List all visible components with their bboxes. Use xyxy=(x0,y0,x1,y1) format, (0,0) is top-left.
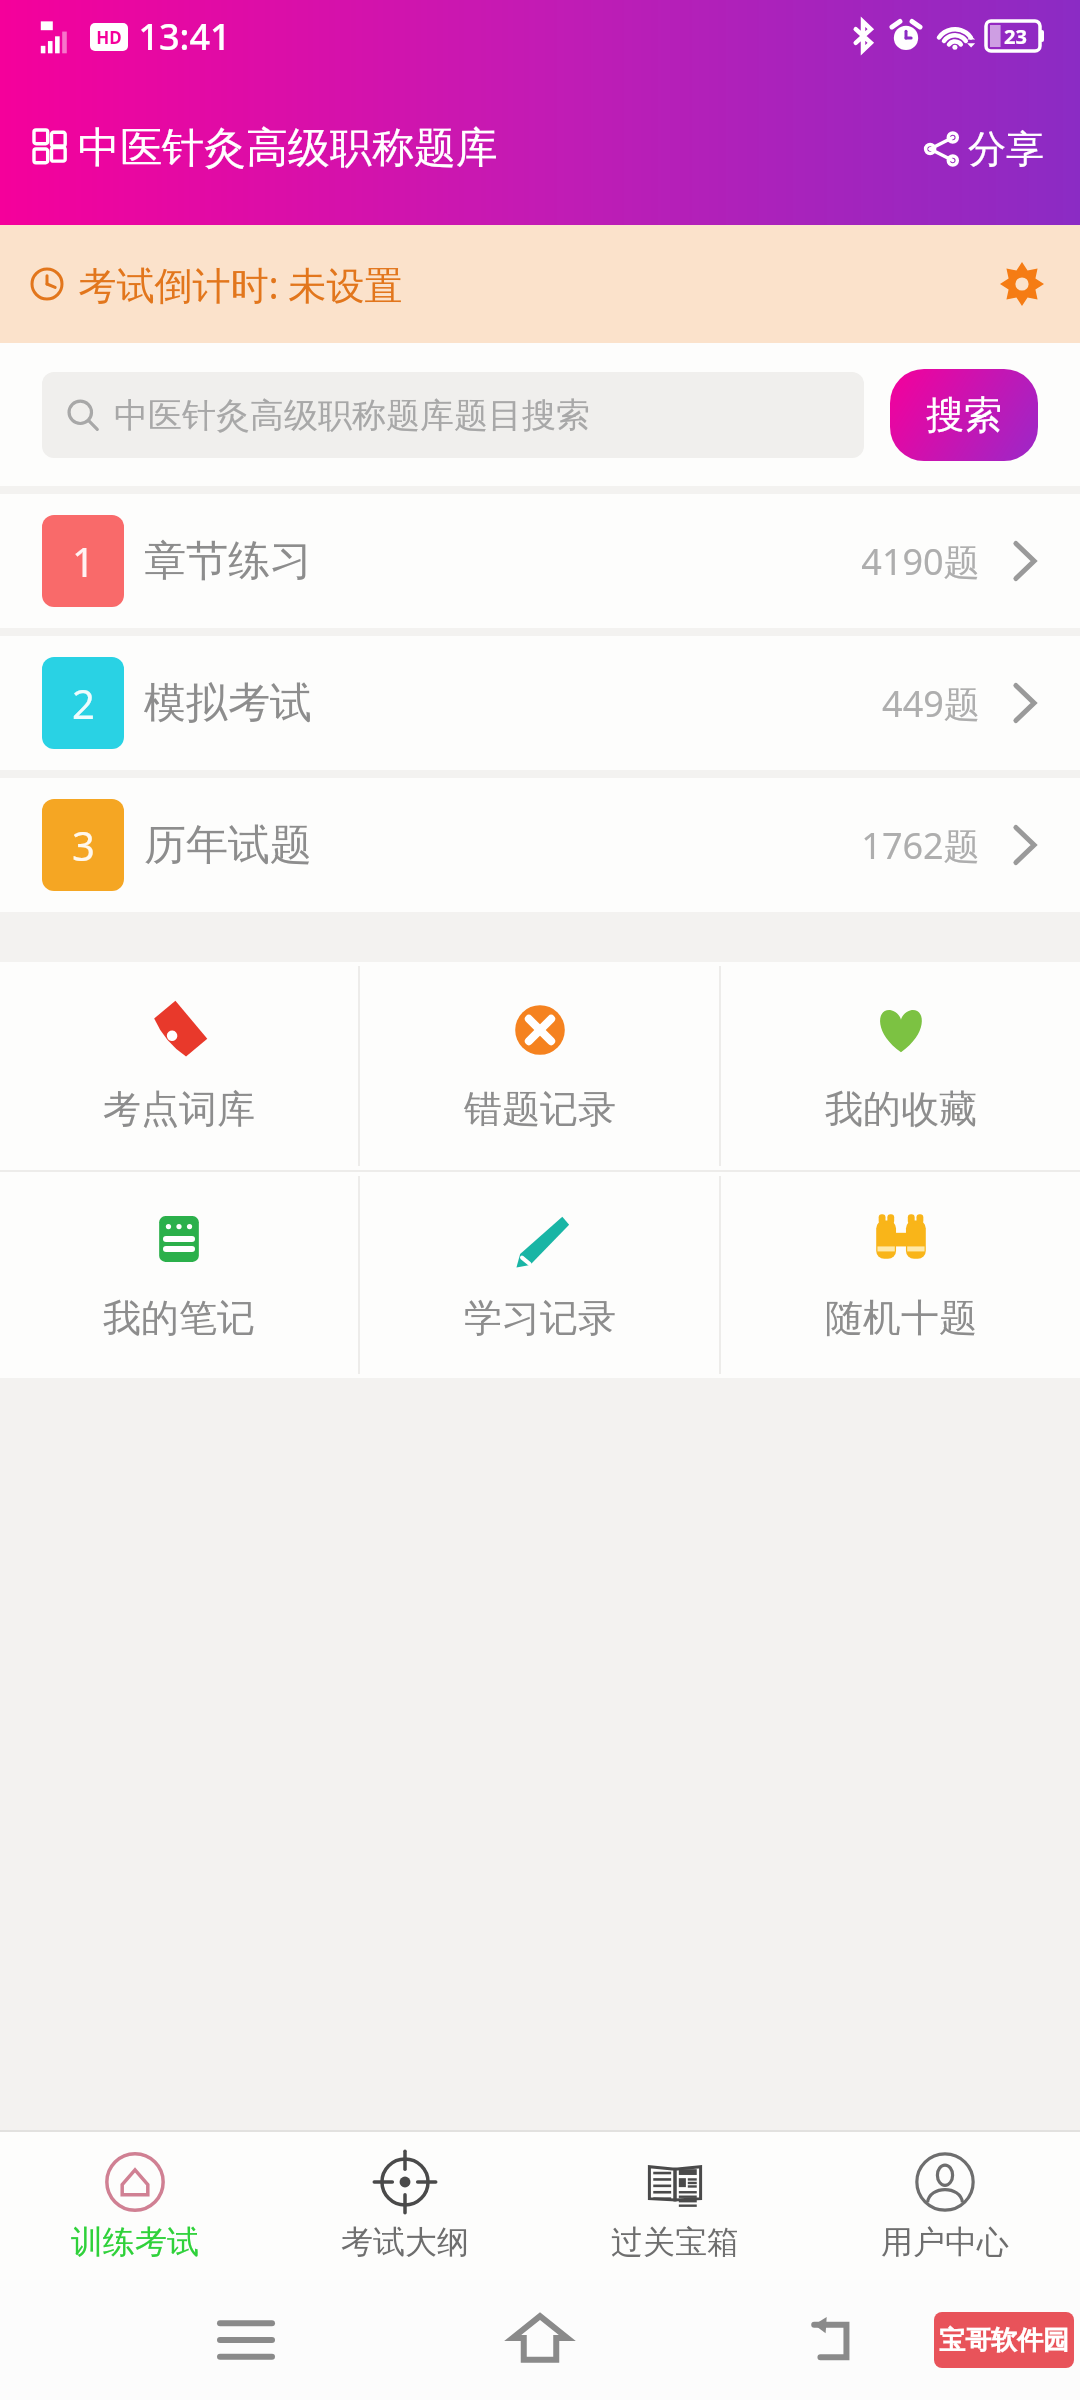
staticText: 3 xyxy=(72,818,95,872)
staticText: 13:41 xyxy=(138,12,231,61)
button[interactable]: 设置 xyxy=(990,252,1054,316)
button[interactable]: Home xyxy=(491,2294,589,2386)
staticText: 章节练习 xyxy=(144,535,312,588)
staticText: 过关宝箱 xyxy=(611,2222,739,2262)
staticText: 2 xyxy=(72,676,95,730)
staticText: 1762题 xyxy=(861,821,980,870)
staticText: 模拟考试 xyxy=(144,677,312,730)
staticText: 随机十题 xyxy=(825,1294,977,1342)
button[interactable]: 2 xyxy=(0,636,1080,770)
button[interactable]: 我的笔记 xyxy=(0,1172,358,1378)
staticText: 我的收藏 xyxy=(825,1085,977,1133)
staticText: 我的笔记 xyxy=(103,1294,255,1342)
staticText: 考试大纲 xyxy=(341,2222,469,2262)
staticText: 4190题 xyxy=(861,537,980,586)
staticText: HD xyxy=(96,26,122,49)
staticText: 考点词库 xyxy=(103,1085,255,1133)
staticText: 1 xyxy=(72,534,95,588)
staticText: 考试倒计时: 未设置 xyxy=(78,258,403,310)
staticText: 中医针灸高级职称题库 xyxy=(78,122,498,175)
button[interactable]: 训练考试 xyxy=(0,2132,270,2280)
button[interactable]: 分享 xyxy=(914,113,1054,185)
button[interactable]: 考试倒计时: 未设置 xyxy=(0,225,1080,343)
button[interactable]: 搜索 xyxy=(890,369,1038,461)
staticText: 中医针灸高级职称题库题目搜索 xyxy=(114,394,590,437)
button[interactable]: 随机十题 xyxy=(721,1172,1080,1378)
staticText: 用户中心 xyxy=(881,2222,1009,2262)
staticText: 449题 xyxy=(882,679,980,728)
staticText: 错题记录 xyxy=(464,1085,616,1133)
staticText: 分享 xyxy=(968,125,1044,173)
button[interactable]: 学习记录 xyxy=(360,1172,719,1378)
button[interactable]: 考试大纲 xyxy=(270,2132,540,2280)
staticText: 23 xyxy=(1004,23,1027,50)
button[interactable]: 1 xyxy=(0,494,1080,628)
staticText: 学习记录 xyxy=(464,1294,616,1342)
button[interactable]: Back xyxy=(789,2296,881,2384)
button[interactable]: 3 xyxy=(0,778,1080,912)
button[interactable]: 中医针灸高级职称题库题目搜索 xyxy=(42,372,864,458)
staticText: 宝哥软件园 xyxy=(939,2324,1069,2357)
staticText: 历年试题 xyxy=(144,819,312,872)
button[interactable]: 过关宝箱 xyxy=(540,2132,810,2280)
button[interactable]: 错题记录 xyxy=(360,962,719,1170)
button[interactable]: 我的收藏 xyxy=(721,962,1080,1170)
button[interactable]: Recents xyxy=(200,2298,292,2382)
button[interactable]: 考点词库 xyxy=(0,962,358,1170)
staticText: 训练考试 xyxy=(71,2222,199,2262)
button[interactable]: 用户中心 xyxy=(810,2132,1080,2280)
staticText: 搜索 xyxy=(926,391,1002,439)
